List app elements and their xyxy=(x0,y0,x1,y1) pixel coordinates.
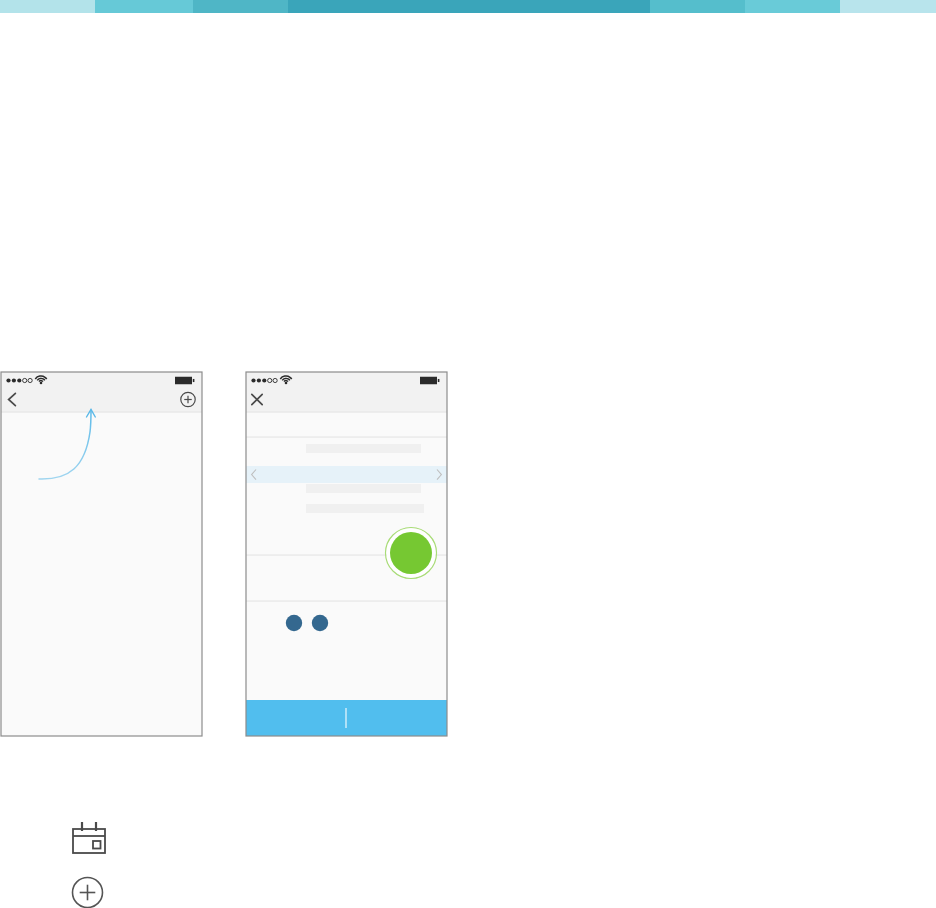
button[interactable]: Save xyxy=(246,700,447,736)
button[interactable]: Calendar xyxy=(70,820,108,860)
button[interactable]: Close xyxy=(248,389,274,412)
button[interactable]: Add xyxy=(70,875,106,908)
button[interactable]: Add xyxy=(174,389,200,412)
button[interactable]: Record xyxy=(386,528,437,579)
button[interactable]: Back xyxy=(3,389,29,412)
